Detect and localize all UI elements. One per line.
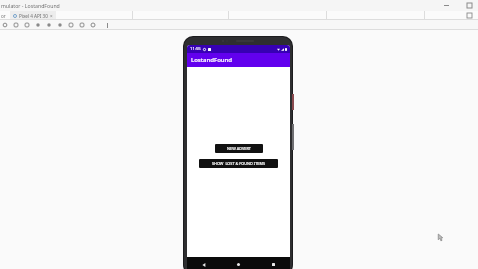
staticText: 11:55	[190, 46, 201, 52]
button[interactable]: Home	[234, 260, 243, 269]
button[interactable]: Maximize	[465, 1, 474, 10]
button[interactable]: Power	[2, 22, 8, 28]
staticText: mulator - LostandFound	[1, 2, 60, 9]
button[interactable]: Pixel 4 API 30	[13, 11, 53, 20]
button[interactable]: Back	[199, 260, 208, 269]
button[interactable]: Volume up	[13, 22, 19, 28]
staticText: LostandFound	[191, 56, 233, 64]
button[interactable]: Panel options	[467, 13, 472, 18]
staticText: SHOW LOST & FOUND ITEMS	[212, 161, 265, 166]
button[interactable]: Rotate left	[35, 22, 41, 28]
button[interactable]: Back	[57, 22, 63, 28]
button[interactable]: SHOW LOST & FOUND ITEMS	[199, 159, 278, 168]
staticText: ×	[50, 13, 53, 19]
button[interactable]: Screenshot	[68, 22, 74, 28]
button[interactable]: Minimize	[442, 1, 451, 10]
staticText: Pixel 4 API 30	[19, 13, 48, 19]
button[interactable]: Volume down	[24, 22, 30, 28]
button[interactable]: Zoom	[90, 22, 96, 28]
staticText: NEW ADVERT	[227, 146, 251, 151]
button[interactable]: NEW ADVERT	[215, 144, 263, 153]
button[interactable]: Rotate right	[46, 22, 52, 28]
button[interactable]: Record screen	[79, 22, 85, 28]
button[interactable]: Recent apps	[269, 260, 278, 269]
staticText: or	[1, 13, 6, 19]
